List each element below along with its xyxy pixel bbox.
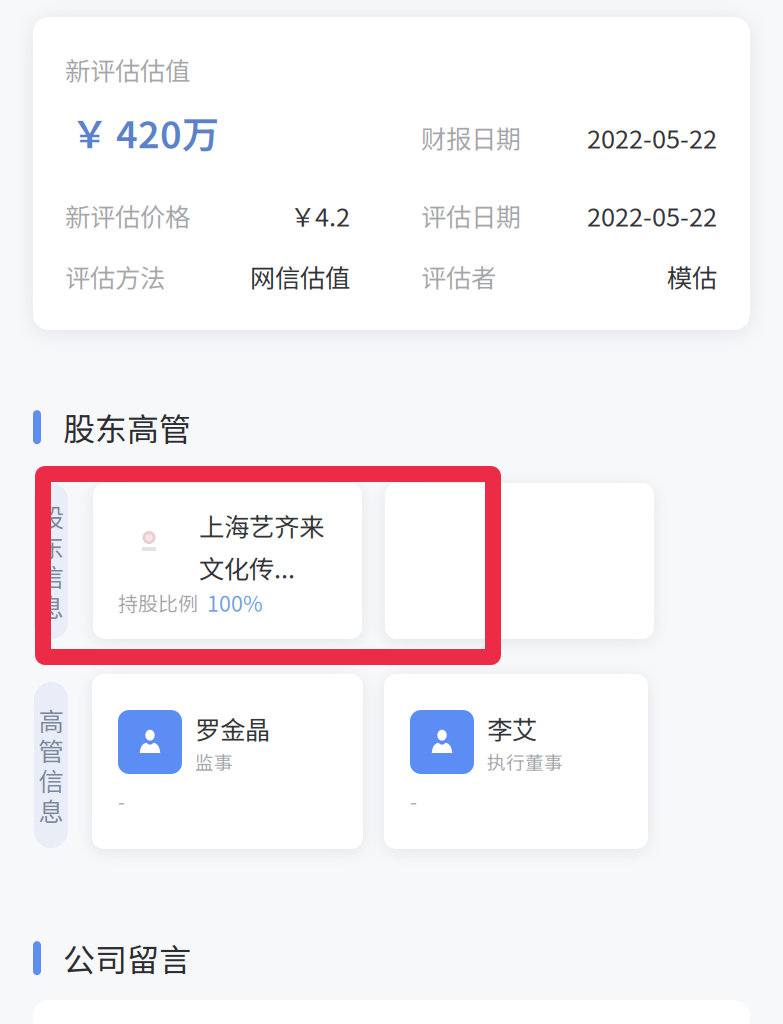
- staticText: -: [410, 786, 417, 815]
- button[interactable]: 上海艺齐来: [93, 483, 362, 639]
- staticText: 2022-05-22: [587, 197, 717, 234]
- staticText: -: [118, 786, 125, 815]
- staticText: 信: [38, 762, 63, 798]
- staticText: 息: [38, 588, 63, 624]
- staticText: 评估日期: [421, 197, 521, 234]
- staticText: 罗金晶: [195, 710, 270, 747]
- staticText: 信: [38, 558, 63, 594]
- staticText: 新评估价格: [65, 197, 190, 234]
- staticText: 息: [38, 792, 63, 828]
- staticText: 2022-05-22: [587, 119, 717, 156]
- staticText: 持股比例: [118, 588, 198, 617]
- staticText: 100%: [207, 587, 263, 618]
- staticText: 评估者: [421, 258, 496, 295]
- staticText: ￥ 420万: [71, 105, 219, 159]
- staticText: 东: [38, 528, 63, 564]
- staticText: 管: [38, 732, 63, 768]
- staticText: 财报日期: [421, 119, 521, 156]
- staticText: 上海艺齐来: [199, 507, 324, 544]
- staticText: 文化传...: [199, 549, 295, 586]
- staticText: 高: [38, 702, 63, 738]
- button[interactable]: 李艾: [384, 674, 648, 849]
- staticText: 李艾: [487, 710, 537, 747]
- staticText: 评估方法: [65, 258, 165, 295]
- staticText: ￥4.2: [290, 197, 350, 234]
- staticText: 执行董事: [487, 748, 563, 775]
- staticText: 股东高管: [63, 404, 191, 450]
- button[interactable]: 罗金晶: [92, 674, 363, 849]
- staticText: 股: [38, 498, 63, 534]
- button[interactable]: 股东信息: [385, 483, 654, 639]
- staticText: 模估: [667, 258, 717, 295]
- staticText: 监事: [195, 748, 233, 775]
- staticText: 新评估估值: [65, 51, 190, 88]
- staticText: 公司留言: [63, 935, 191, 981]
- staticText: 网信估值: [250, 258, 350, 295]
